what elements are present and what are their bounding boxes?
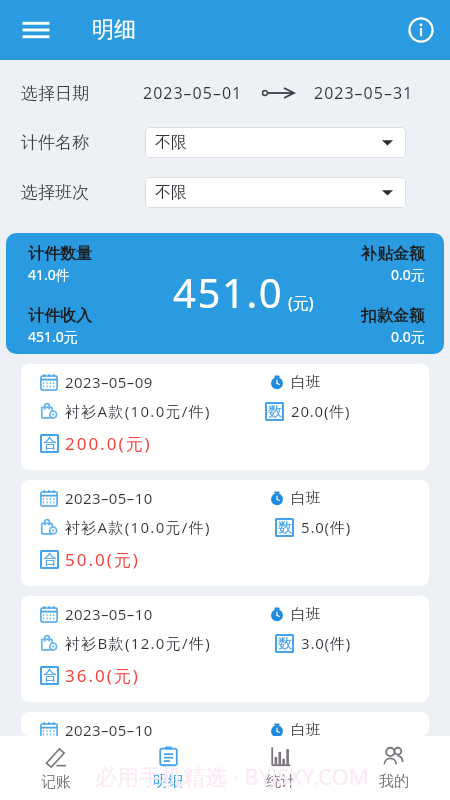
button[interactable]: 不限 (145, 127, 406, 158)
staticText: 41.0件 (28, 265, 70, 284)
staticText: 5.0(件) (301, 517, 351, 537)
staticText: 2023–05–10 (65, 720, 153, 736)
staticText: 合 (43, 667, 57, 685)
staticText: 我的 (379, 772, 409, 791)
staticText: 计件收入 (28, 306, 92, 326)
staticText: 数 (278, 519, 292, 537)
staticText: 白班 (291, 489, 321, 508)
staticText: 计件数量 (28, 244, 92, 264)
staticText: 2023–05–09 (65, 372, 153, 392)
button[interactable]: Info (399, 8, 443, 52)
staticText: 白班 (291, 373, 321, 392)
button[interactable]: 我的 (337, 736, 450, 800)
button[interactable]: 2023–05–09 (21, 364, 429, 470)
staticText: 数 (268, 403, 282, 421)
button[interactable]: 统计 (224, 736, 337, 800)
staticText: 扣款金额 (361, 306, 425, 326)
button[interactable]: 2023–05–10 (21, 596, 429, 702)
button[interactable]: 2023–05–10 (21, 480, 429, 586)
staticText: 2023–05–31 (314, 82, 414, 104)
staticText: 36.0(元) (65, 664, 140, 687)
staticText: 明细 (92, 16, 136, 44)
button[interactable]: Menu (14, 8, 58, 52)
button[interactable]: 明细 (112, 736, 224, 800)
staticText: 补贴金额 (361, 244, 425, 264)
button[interactable]: 2023–05–10 (21, 712, 429, 736)
staticText: 统计 (266, 772, 296, 791)
staticText: 2023–05–10 (65, 488, 153, 508)
staticText: 0.0元 (391, 327, 425, 346)
staticText: 不限 (155, 183, 187, 203)
staticText: 必用手机精选 · BYJSXY.COM (95, 761, 369, 791)
button[interactable]: 记账 (0, 736, 112, 800)
staticText: 白班 (291, 605, 321, 624)
staticText: 2023–05–10 (65, 604, 153, 624)
staticText: 451.0 (173, 265, 284, 319)
staticText: 20.0(件) (291, 401, 351, 421)
staticText: 衬衫B款(12.0元/件) (65, 633, 211, 653)
staticText: 衬衫A款(10.0元/件) (65, 401, 211, 421)
staticText: 选择日期 (21, 83, 89, 104)
staticText: 2023–05–01 (143, 82, 243, 104)
staticText: 计件名称 (21, 132, 89, 153)
staticText: 合 (43, 435, 57, 453)
staticText: (元) (288, 292, 314, 314)
staticText: 数 (278, 635, 292, 653)
staticText: 200.0(元) (65, 432, 152, 455)
staticText: 衬衫A款(10.0元/件) (65, 517, 211, 537)
button[interactable]: 不限 (145, 177, 406, 208)
staticText: 451.0元 (28, 327, 78, 346)
staticText: 合 (43, 551, 57, 569)
button[interactable]: 选择日期 (0, 72, 450, 114)
staticText: 明细 (153, 772, 183, 791)
staticText: 50.0(元) (65, 548, 140, 571)
staticText: 3.0(件) (301, 633, 351, 653)
staticText: 0.0元 (391, 265, 425, 284)
staticText: 白班 (291, 721, 321, 736)
staticText: 选择班次 (21, 182, 89, 203)
staticText: 不限 (155, 133, 187, 153)
staticText: 记账 (41, 773, 71, 792)
